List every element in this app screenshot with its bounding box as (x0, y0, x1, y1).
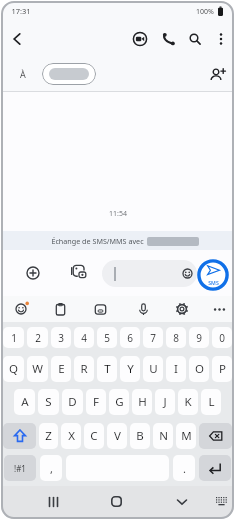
staticText: !#1 (14, 463, 26, 474)
button[interactable]: Y (120, 356, 140, 382)
button[interactable] (11, 33, 23, 45)
button[interactable] (215, 495, 228, 508)
staticText: W (32, 361, 43, 377)
staticText: Y (127, 361, 134, 377)
staticText: 8 (173, 331, 179, 345)
staticText: R (80, 361, 88, 377)
button[interactable]: A (14, 389, 35, 415)
button[interactable] (54, 303, 67, 316)
button[interactable] (213, 303, 226, 316)
button[interactable] (215, 33, 227, 45)
button[interactable] (94, 303, 107, 316)
staticText: L (208, 394, 215, 410)
staticText: M (181, 428, 192, 444)
staticText: , (50, 461, 53, 476)
button[interactable]: SMS (197, 259, 229, 291)
button[interactable] (175, 302, 189, 316)
button[interactable]: 1 (3, 327, 24, 348)
staticText: Q (9, 361, 18, 377)
staticText: 2 (35, 331, 41, 345)
staticText: X (68, 428, 75, 444)
button[interactable]: 0 (212, 327, 232, 348)
button[interactable]: S (38, 389, 59, 415)
staticText: Z (45, 428, 52, 444)
button[interactable]: 7 (143, 327, 163, 348)
button[interactable] (199, 423, 232, 449)
button[interactable]: W (27, 356, 48, 382)
button[interactable]: U (143, 356, 163, 382)
staticText: 7 (150, 331, 156, 345)
staticText: SMS (208, 279, 219, 286)
button[interactable] (111, 496, 122, 507)
button[interactable] (71, 265, 87, 281)
button[interactable] (3, 423, 36, 449)
button[interactable]: C (84, 423, 104, 449)
button[interactable]: L (201, 389, 221, 415)
button[interactable] (48, 496, 60, 508)
staticText: P (219, 361, 226, 377)
staticText: S (45, 394, 52, 410)
button[interactable] (162, 32, 176, 46)
button[interactable]: 3 (51, 327, 71, 348)
button[interactable]: Z (39, 423, 58, 449)
staticText: 17:31 (11, 6, 31, 16)
button[interactable]: O (189, 356, 209, 382)
button[interactable]: , (40, 455, 62, 481)
button[interactable]: 9 (189, 327, 209, 348)
button[interactable]: X (61, 423, 81, 449)
staticText: H (138, 394, 147, 410)
button[interactable]: P (212, 356, 232, 382)
button[interactable]: G (109, 389, 129, 415)
staticText: I (174, 361, 178, 377)
staticText: À (20, 68, 26, 80)
button[interactable] (42, 63, 96, 85)
staticText: 3 (58, 331, 64, 345)
button[interactable]: K (178, 389, 198, 415)
staticText: 6 (127, 331, 133, 345)
button[interactable] (26, 266, 40, 280)
button[interactable]: 4 (74, 327, 94, 348)
button[interactable]: 5 (97, 327, 117, 348)
button[interactable] (209, 66, 226, 83)
button[interactable]: B (130, 423, 150, 449)
button[interactable]: 2 (27, 327, 48, 348)
button[interactable]: Q (3, 356, 24, 382)
button[interactable]: T (97, 356, 117, 382)
staticText: 4 (81, 331, 87, 345)
button[interactable]: D (62, 389, 83, 415)
staticText: 9 (196, 331, 202, 345)
staticText: 1 (11, 331, 17, 345)
staticText: O (195, 361, 204, 377)
button[interactable]: I (166, 356, 186, 382)
button[interactable] (102, 260, 197, 287)
staticText: . (183, 461, 186, 476)
button[interactable]: E (51, 356, 71, 382)
button[interactable]: J (155, 389, 175, 415)
button[interactable]: N (153, 423, 173, 449)
staticText: D (68, 394, 77, 410)
button[interactable]: . (173, 455, 195, 481)
staticText: J (163, 394, 167, 410)
button[interactable]: F (86, 389, 106, 415)
staticText: G (115, 394, 124, 410)
button[interactable] (176, 496, 188, 508)
button[interactable] (199, 455, 231, 481)
staticText: U (149, 361, 158, 377)
button[interactable] (182, 268, 193, 279)
button[interactable]: R (74, 356, 94, 382)
button[interactable] (132, 31, 148, 47)
button[interactable]: 6 (120, 327, 140, 348)
button[interactable]: H (132, 389, 152, 415)
button[interactable]: M (176, 423, 196, 449)
button[interactable]: 8 (166, 327, 186, 348)
staticText: C (90, 428, 98, 444)
staticText: F (93, 394, 99, 410)
staticText: Échange de SMS/MMS avec (51, 236, 144, 246)
button[interactable]: V (107, 423, 127, 449)
button[interactable] (137, 303, 150, 316)
button[interactable]: !#1 (4, 455, 36, 481)
button[interactable] (189, 33, 202, 46)
staticText: T (104, 361, 111, 377)
button[interactable] (15, 303, 27, 315)
